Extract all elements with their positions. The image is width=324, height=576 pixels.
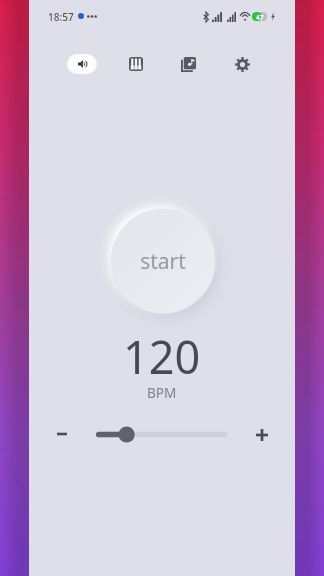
button[interactable]: start [83,181,243,341]
button[interactable]: Tempo slider [96,424,227,445]
button[interactable]: Music library [176,52,200,76]
button[interactable]: Decrease tempo [46,418,78,450]
button[interactable]: Piano [124,52,148,76]
button[interactable]: Increase tempo [246,419,278,451]
button[interactable]: Sound [67,54,97,74]
staticText: start [140,247,186,276]
button[interactable]: Settings [230,52,254,76]
staticText: 18:57 [48,10,74,24]
staticText: 120 [123,326,201,387]
staticText: BPM [147,383,177,402]
staticText: 47 [256,13,264,22]
